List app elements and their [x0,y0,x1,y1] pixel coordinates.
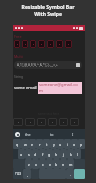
staticText: . [70,172,71,177]
button[interactable]: c [39,159,46,169]
button[interactable] [37,118,46,126]
button[interactable] [65,40,72,48]
staticText: k [70,152,72,157]
other: Save [76,63,80,67]
button[interactable]: . [66,169,74,179]
button[interactable]: f [39,149,46,159]
staticText: q [16,142,19,147]
button[interactable]: o [71,139,78,149]
staticText: f [42,152,44,157]
button[interactable]: A,1,!,@,#,$,%,^,&,*,(,),-,_,=,+ [17,61,80,69]
staticText: y [53,142,55,147]
staticText: p [80,142,83,147]
button[interactable]: t [43,139,50,149]
staticText: Multi [14,54,23,59]
staticText: u [59,142,62,147]
button[interactable] [38,40,45,48]
staticText: x [35,162,37,167]
staticText: l [77,152,78,157]
button[interactable]: Voice input [15,132,20,137]
staticText: v [49,162,51,167]
staticText: h [55,152,58,157]
staticText: c [42,162,44,167]
staticText: o [73,142,76,147]
button[interactable] [70,118,79,126]
staticText: z [28,162,30,167]
staticText: m [69,162,73,167]
button[interactable]: q [13,139,21,149]
button[interactable]: s [25,149,32,159]
staticText: ?123 [15,172,22,176]
button[interactable] [14,40,20,48]
staticText: a [20,152,23,157]
staticText: j [63,152,64,157]
button[interactable]: l [74,149,81,159]
button[interactable]: x [32,159,39,169]
staticText: the [25,132,31,137]
button[interactable] [13,118,23,126]
button[interactable]: h [53,149,60,159]
button[interactable] [47,40,54,48]
staticText: , [27,172,28,177]
button[interactable]: v [46,159,53,169]
staticText: A,1,!,@,#,$,%,^,&,*,(,),-,_,=,+ [17,63,58,67]
staticText: t [46,142,48,147]
button[interactable] [25,118,35,126]
staticText: I [72,132,74,137]
button[interactable]: j [60,149,67,159]
staticText: g [48,152,51,157]
button[interactable] [56,40,63,48]
button[interactable] [30,40,36,48]
button[interactable]: n [60,159,67,169]
staticText: s [28,152,30,157]
button[interactable]: u [57,139,64,149]
button[interactable]: r [36,139,43,149]
staticText: w [24,142,27,147]
button[interactable]: i [64,139,71,149]
button[interactable]: g [46,149,53,159]
staticText: d [34,152,37,157]
staticText: r [39,142,41,147]
staticText: i [67,142,68,147]
button[interactable]: p [78,139,85,149]
staticText: to [50,132,54,137]
staticText: String [14,75,23,79]
button[interactable]: ?123 [13,169,23,179]
button[interactable]: a [18,149,25,159]
button[interactable] [22,40,28,48]
staticText: some email [14,85,38,91]
staticText: b [55,162,58,167]
button[interactable]: e [29,139,36,149]
staticText: Resizable Symbol Bar With Swipe [0,4,96,17]
button[interactable] [59,118,68,126]
button[interactable] [48,118,57,126]
staticText: n [62,162,65,167]
staticText: someone@gmail.com [39,82,81,94]
button[interactable]: , [23,169,31,179]
button[interactable]: d [32,149,39,159]
button[interactable]: z [25,159,32,169]
button[interactable]: m [67,159,74,169]
button[interactable]: y [50,139,57,149]
button[interactable]: w [21,139,29,149]
button[interactable]: b [53,159,60,169]
staticText: Free [14,34,22,39]
button[interactable]: Enter [74,169,85,179]
staticText: e [31,142,34,147]
button[interactable]: k [67,149,74,159]
